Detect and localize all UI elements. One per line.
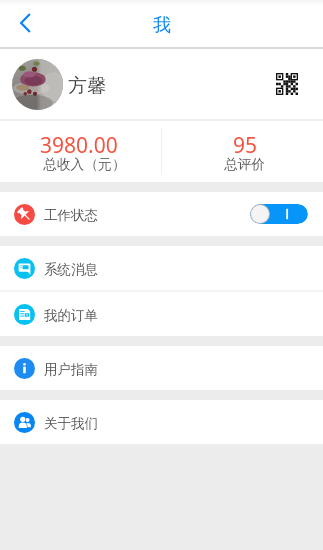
staticText: 总收入（元） bbox=[43, 156, 126, 173]
staticText: 我的订单 bbox=[44, 307, 98, 324]
button[interactable]: 方馨 bbox=[0, 49, 323, 119]
staticText: 我 bbox=[153, 14, 171, 37]
button[interactable]: 工作状态 bbox=[0, 192, 323, 236]
button[interactable]: 用户指南 bbox=[0, 346, 323, 390]
button[interactable]: My QR code bbox=[275, 67, 309, 101]
button[interactable]: Work status switch bbox=[250, 204, 308, 224]
button[interactable]: 3980.00 bbox=[0, 121, 161, 182]
button[interactable]: 关于我们 bbox=[0, 400, 323, 444]
staticText: 3980.00 bbox=[40, 131, 118, 160]
staticText: 关于我们 bbox=[44, 415, 98, 432]
staticText: 用户指南 bbox=[44, 361, 98, 378]
staticText: 工作状态 bbox=[44, 207, 98, 224]
staticText: 总评价 bbox=[224, 156, 266, 173]
button[interactable]: 系统消息 bbox=[0, 246, 323, 290]
staticText: 95 bbox=[233, 131, 258, 160]
button[interactable]: Back bbox=[5, 2, 45, 43]
button[interactable]: 我的订单 bbox=[0, 292, 323, 336]
button[interactable]: 95 bbox=[162, 121, 323, 182]
staticText: 方馨 bbox=[68, 74, 106, 98]
staticText: 系统消息 bbox=[44, 261, 98, 278]
